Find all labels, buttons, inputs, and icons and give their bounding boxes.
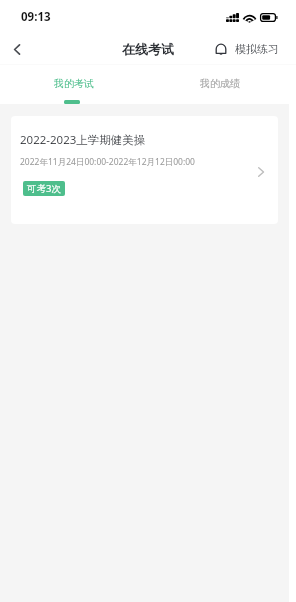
button[interactable]: 我的考试 — [0, 64, 148, 104]
staticText: 09:13 — [21, 9, 51, 25]
staticText: 2022-2023上学期健美操 — [20, 132, 146, 148]
button[interactable]: 2022-2023上学期健美操 — [11, 116, 278, 224]
staticText: 我的考试 — [54, 77, 94, 90]
staticText: 模拟练习 — [235, 42, 279, 56]
button[interactable]: 我的成绩 — [148, 64, 296, 104]
staticText: 可考3次 — [27, 182, 61, 195]
staticText: 我的成绩 — [200, 77, 240, 90]
button[interactable]: 模拟练习 — [209, 34, 296, 64]
staticText: 在线考试 — [122, 41, 174, 57]
button[interactable]: Back — [0, 34, 34, 64]
staticText: 2022年11月24日00:00-2022年12月12日00:00 — [20, 156, 195, 168]
